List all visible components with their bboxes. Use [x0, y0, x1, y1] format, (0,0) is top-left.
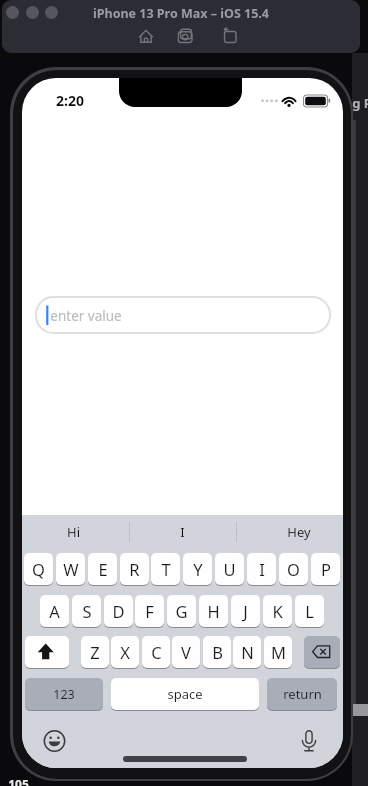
button[interactable]	[304, 636, 340, 668]
staticText: H	[207, 600, 220, 622]
staticText: O	[287, 558, 300, 580]
staticText: J	[243, 600, 248, 622]
button[interactable]: E	[88, 553, 117, 585]
button[interactable]: Q	[24, 553, 53, 585]
button[interactable]: H	[199, 595, 228, 627]
staticText: V	[181, 641, 191, 663]
button[interactable]: U	[215, 553, 244, 585]
button[interactable]	[298, 729, 322, 753]
staticText: N	[241, 641, 254, 663]
staticText: A	[49, 600, 60, 622]
button[interactable]: I	[247, 553, 276, 585]
button[interactable]: O	[279, 553, 308, 585]
button[interactable]	[44, 729, 68, 753]
staticText: U	[223, 558, 236, 580]
staticText: B	[212, 641, 223, 663]
button[interactable]: V	[172, 636, 200, 668]
button[interactable]: A	[40, 595, 69, 627]
button[interactable]	[25, 636, 69, 668]
button[interactable]: B	[203, 636, 231, 668]
staticText: iPhone 13 Pro Max – iOS 15.4	[93, 5, 269, 22]
button[interactable]: Hi	[43, 522, 103, 542]
staticText: 2:20	[56, 91, 84, 110]
staticText: Z	[90, 641, 100, 663]
staticText: E	[98, 558, 108, 580]
button[interactable]: N	[233, 636, 261, 668]
button[interactable]: L	[295, 595, 324, 627]
button[interactable]: W	[56, 553, 85, 585]
staticText: return	[283, 685, 322, 703]
staticText: P	[321, 558, 331, 580]
button[interactable]: M	[264, 636, 292, 668]
staticText: T	[161, 558, 171, 580]
button[interactable]: F	[135, 595, 164, 627]
button[interactable]: Y	[183, 553, 212, 585]
button[interactable]	[26, 6, 39, 19]
staticText: S	[82, 600, 92, 622]
staticText: Q	[32, 558, 45, 580]
button[interactable]: 123	[25, 678, 103, 710]
button[interactable]	[45, 6, 58, 19]
staticText: 105	[8, 776, 29, 786]
staticText: Y	[193, 558, 203, 580]
button[interactable]: R	[120, 553, 149, 585]
staticText: Hey	[287, 523, 311, 541]
button[interactable]: P	[311, 553, 340, 585]
staticText: K	[272, 600, 283, 622]
button[interactable]: X	[111, 636, 139, 668]
button[interactable]: J	[231, 595, 260, 627]
staticText: F	[145, 600, 154, 622]
button[interactable]: space	[111, 678, 259, 710]
button[interactable]	[6, 6, 19, 19]
button[interactable]: I	[152, 522, 212, 542]
staticText: R	[129, 558, 140, 580]
staticText: W	[63, 558, 79, 580]
staticText: D	[112, 600, 125, 622]
staticText: G	[175, 600, 188, 622]
button[interactable]: G	[167, 595, 196, 627]
button[interactable]: C	[142, 636, 170, 668]
staticText: g P	[352, 94, 368, 112]
staticText: enter value	[50, 307, 122, 325]
button[interactable]	[35, 296, 331, 334]
staticText: I	[180, 523, 185, 541]
staticText: space	[167, 685, 203, 703]
button[interactable]: Hey	[269, 522, 329, 542]
staticText: C	[151, 641, 162, 663]
staticText: M	[271, 641, 286, 663]
staticText: Hi	[67, 523, 80, 541]
staticText: L	[305, 600, 314, 622]
button[interactable]: K	[263, 595, 292, 627]
button[interactable]: S	[72, 595, 101, 627]
staticText: 123	[53, 686, 75, 703]
button[interactable]: D	[104, 595, 133, 627]
staticText: X	[120, 641, 130, 663]
button[interactable]: T	[151, 553, 180, 585]
button[interactable]: return	[267, 678, 337, 710]
button[interactable]: Z	[81, 636, 109, 668]
staticText: I	[259, 558, 265, 580]
